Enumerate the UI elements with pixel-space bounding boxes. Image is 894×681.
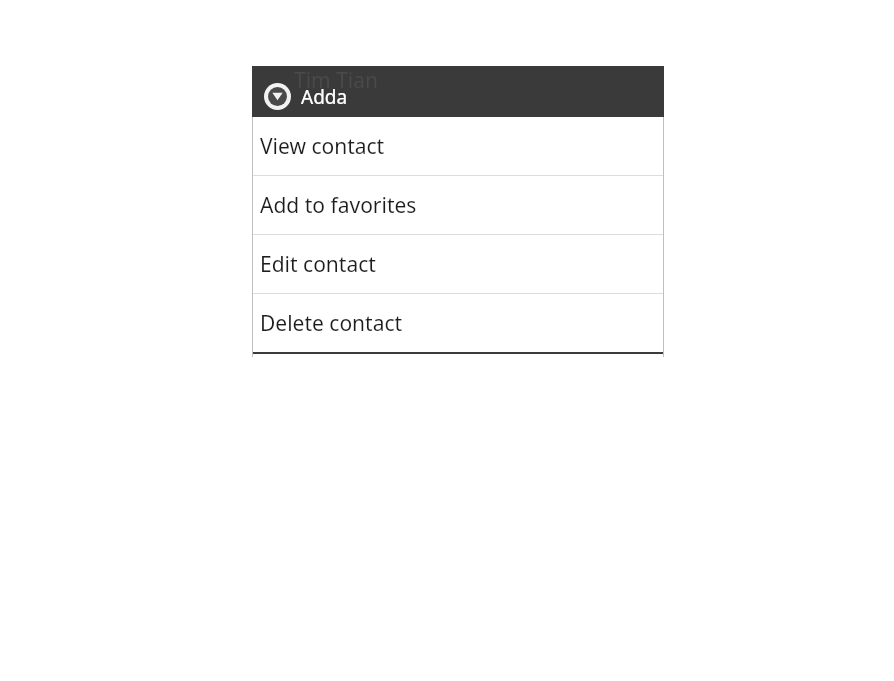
staticText: Tim Tian: [294, 66, 379, 95]
button[interactable]: Delete contact: [252, 294, 664, 352]
button[interactable]: View contact: [252, 117, 664, 175]
other: Expand contact menu: [264, 83, 291, 110]
staticText: Add to favorites: [260, 191, 417, 220]
button[interactable]: Tim Tian: [252, 66, 664, 117]
button[interactable]: Edit contact: [252, 235, 664, 293]
staticText: View contact: [260, 132, 385, 161]
staticText: Adda: [301, 84, 348, 110]
staticText: Edit contact: [260, 250, 376, 279]
staticText: Delete contact: [260, 309, 403, 338]
button[interactable]: Add to favorites: [252, 176, 664, 234]
